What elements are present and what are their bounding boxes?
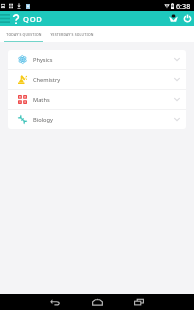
staticText: TODAY'S QUESTION xyxy=(6,32,42,37)
button[interactable]: Menu xyxy=(0,11,11,26)
staticText: Biology xyxy=(33,116,53,124)
button[interactable]: Physics xyxy=(8,50,186,69)
button[interactable]: Biology xyxy=(8,110,186,129)
button[interactable]: YESTERDAY'S SOLUTION xyxy=(47,26,97,42)
staticText: Physics xyxy=(33,56,53,64)
button[interactable]: Maths xyxy=(8,90,186,109)
button[interactable]: Home xyxy=(83,294,111,310)
staticText: Maths xyxy=(33,96,50,104)
staticText: 6:38 xyxy=(176,1,191,11)
button[interactable]: Back xyxy=(41,294,69,310)
button[interactable]: TODAY'S QUESTION xyxy=(0,26,47,42)
button[interactable]: Recents xyxy=(125,294,153,310)
staticText: QOD xyxy=(23,14,43,24)
button[interactable]: Chemistry xyxy=(8,70,186,89)
button[interactable]: Power xyxy=(180,11,194,26)
button[interactable]: Cart xyxy=(166,11,180,26)
staticText: Chemistry xyxy=(33,76,61,84)
staticText: YESTERDAY'S SOLUTION xyxy=(50,32,94,37)
